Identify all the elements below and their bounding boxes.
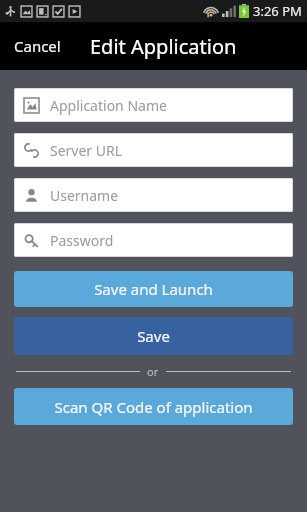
staticText: Application Name xyxy=(50,96,167,115)
button[interactable]: Password xyxy=(14,223,293,257)
button[interactable]: Application Name xyxy=(14,88,293,122)
button[interactable]: Save xyxy=(14,317,293,355)
button[interactable]: Server URL xyxy=(14,133,293,167)
staticText: Save xyxy=(137,326,170,346)
staticText: Username xyxy=(50,186,119,205)
staticText: or xyxy=(147,364,159,378)
staticText: Cancel xyxy=(14,36,61,56)
staticText: Password xyxy=(50,231,114,250)
button[interactable]: Save and Launch xyxy=(14,271,293,307)
staticText: Edit Application xyxy=(90,33,237,60)
button[interactable]: Cancel xyxy=(0,26,75,66)
staticText: Server URL xyxy=(50,141,123,160)
button[interactable]: Username xyxy=(14,178,293,212)
staticText: 3:26 PM xyxy=(253,2,302,20)
staticText: Scan QR Code of application xyxy=(54,397,253,417)
button[interactable]: Scan QR Code of application xyxy=(14,388,293,425)
staticText: Save and Launch xyxy=(94,279,213,299)
